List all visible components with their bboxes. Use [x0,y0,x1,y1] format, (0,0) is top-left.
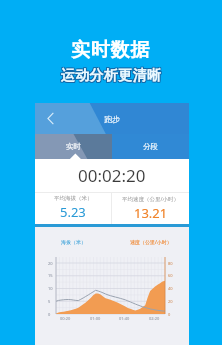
staticText: 速度（公里/小时） [130,239,172,246]
staticText: 10 [48,286,53,291]
staticText: 00:02:20 [78,164,146,187]
staticText: 运动分析更清晰 [61,66,162,84]
staticText: 实时 [66,142,81,151]
staticText: 40 [168,286,173,291]
button[interactable]: 返回 [43,111,58,126]
staticText: 13.21 [134,204,168,222]
button[interactable]: 分段 [112,134,189,159]
staticText: 运动分析更清晰 [62,66,163,84]
staticText: 平均海拔（米） [54,195,93,202]
staticText: 01:40 [119,316,130,321]
staticText: 0 [48,312,51,317]
staticText: 分段 [143,142,158,151]
staticText: 00:20 [60,316,71,321]
staticText: 海拔（米） [61,239,86,245]
staticText: 运动分析更清晰 [61,67,162,85]
staticText: 平均速度（公里/小时） [122,195,180,203]
staticText: 20 [168,299,173,304]
staticText: 80 [168,261,173,266]
button[interactable]: 平均海拔（米） [35,192,111,224]
button[interactable]: 实时 [35,134,112,159]
staticText: 跑步 [104,114,120,124]
staticText: 5.23 [60,203,86,221]
staticText: 运动分析更清晰 [60,68,161,86]
staticText: 运动分析更清晰 [61,68,162,86]
staticText: 实时数据 [71,38,151,62]
staticText: 运动分析更清晰 [62,67,163,85]
staticText: 15 [48,273,53,278]
staticText: 20 [48,261,53,266]
staticText: 运动分析更清晰 [62,68,163,86]
staticText: 5 [48,299,51,304]
staticText: 60 [168,273,173,278]
staticText: 0 [168,312,171,317]
staticText: 运动分析更清晰 [60,66,161,84]
staticText: 01:00 [90,316,101,321]
button[interactable]: 平均速度（公里/小时） [112,192,189,224]
staticText: 运动分析更清晰 [60,67,161,85]
staticText: 02:20 [149,316,160,321]
